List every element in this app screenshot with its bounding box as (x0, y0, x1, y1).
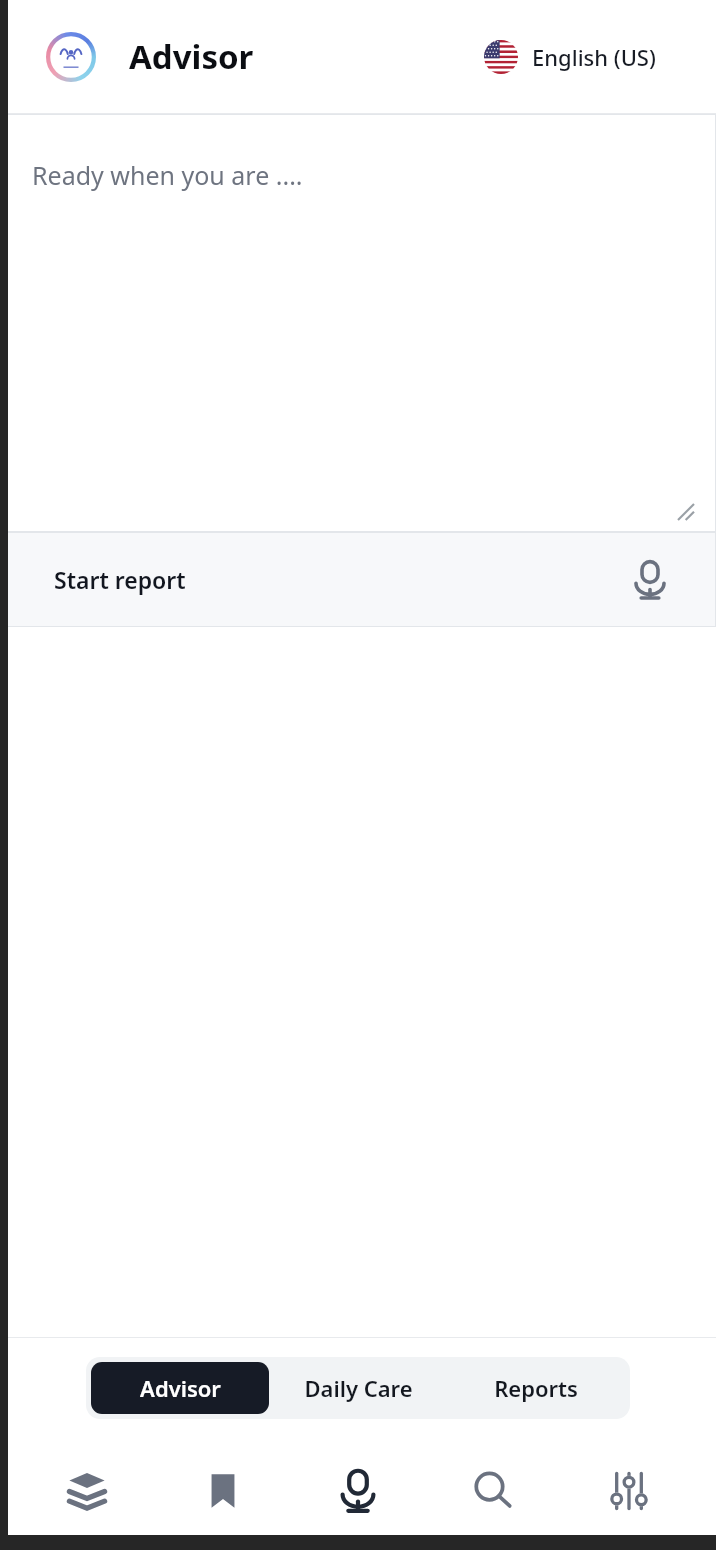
staticText: Ready when you are .... (32, 158, 303, 192)
staticText: Advisor (129, 34, 254, 79)
button[interactable]: Daily Care (269, 1362, 447, 1414)
staticText: Daily Care (304, 1373, 413, 1403)
staticText: Reports (494, 1373, 578, 1403)
button[interactable]: English (US) (480, 34, 660, 80)
button[interactable]: Advisor (91, 1362, 269, 1414)
button[interactable]: Reports (447, 1362, 625, 1414)
button[interactable]: Ready when you are .... (0, 114, 716, 532)
button[interactable]: Start report (0, 532, 716, 627)
button[interactable]: Search (445, 1443, 541, 1539)
button[interactable]: Bookmarks (175, 1443, 271, 1539)
button[interactable]: Settings (581, 1443, 677, 1539)
button[interactable]: Library (39, 1443, 135, 1539)
button[interactable]: Voice (310, 1443, 406, 1539)
button[interactable]: Start voice report (624, 554, 676, 606)
staticText: Advisor (140, 1373, 221, 1403)
staticText: Start report (54, 564, 186, 595)
staticText: English (US) (532, 42, 656, 72)
